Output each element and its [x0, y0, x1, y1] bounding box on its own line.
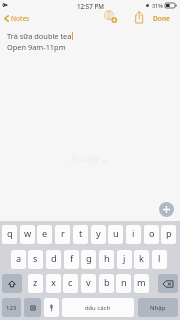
button[interactable]: t [73, 225, 88, 244]
staticText: m [137, 276, 146, 289]
button[interactable]: f [64, 250, 79, 269]
button[interactable]: c [63, 274, 78, 293]
button[interactable]: q [2, 225, 17, 244]
button[interactable]: Backspace [158, 274, 178, 293]
staticText: q [7, 227, 13, 240]
button[interactable]: r [55, 225, 70, 244]
staticText: f [70, 252, 74, 265]
staticText: v [86, 276, 91, 289]
staticText: s [33, 252, 38, 265]
button[interactable]: Emoji [24, 298, 41, 317]
button[interactable]: u [108, 225, 123, 244]
button[interactable]: y [91, 225, 106, 244]
staticText: i [132, 227, 135, 240]
staticText: h [104, 252, 110, 265]
staticText: 31% [152, 2, 163, 9]
button[interactable]: i [126, 225, 141, 244]
button[interactable]: e [37, 225, 52, 244]
button[interactable]: m [134, 274, 149, 293]
staticText: e [42, 227, 48, 240]
staticText: Trà sữa double tea [7, 31, 72, 41]
staticText: a [16, 252, 22, 265]
button[interactable]: a [11, 250, 26, 269]
button[interactable]: Share [132, 9, 146, 24]
staticText: x [51, 276, 56, 289]
staticText: y [96, 227, 101, 240]
button[interactable]: Add [159, 202, 174, 217]
staticText: b [104, 276, 110, 289]
button[interactable]: w [20, 225, 35, 244]
button[interactable]: Attach [104, 10, 118, 24]
staticText: d [51, 252, 57, 265]
staticText: l [158, 252, 161, 265]
button[interactable]: v [81, 274, 96, 293]
staticText: g [86, 252, 92, 265]
staticText: dấu cách [85, 304, 111, 312]
button[interactable]: Done [150, 12, 173, 25]
staticText: j [123, 252, 126, 265]
staticText: t [79, 227, 83, 240]
button[interactable]: o [144, 225, 159, 244]
staticText: w [24, 227, 32, 240]
staticText: o [149, 227, 155, 240]
staticText: k [139, 252, 144, 265]
staticText: 12:57 PM [77, 2, 104, 10]
button[interactable]: b [99, 274, 114, 293]
button[interactable]: Shift [2, 274, 22, 293]
button[interactable]: l [152, 250, 167, 269]
staticText: r [61, 227, 65, 240]
button[interactable]: d [46, 250, 61, 269]
staticText: c [68, 276, 73, 289]
staticText: Nhập [150, 304, 166, 312]
button[interactable]: Notes [0, 12, 34, 25]
staticText: z [33, 276, 38, 289]
button[interactable]: z [28, 274, 43, 293]
button[interactable]: g [81, 250, 96, 269]
button[interactable]: Nhập [138, 298, 178, 317]
button[interactable]: x [46, 274, 61, 293]
button[interactable]: dấu cách [62, 298, 134, 317]
staticText: Open 9am-11pm [7, 42, 66, 52]
button[interactable]: n [116, 274, 131, 293]
staticText: Notes [11, 14, 30, 23]
staticText: n [121, 276, 127, 289]
button[interactable]: h [99, 250, 114, 269]
staticText: p [166, 227, 172, 240]
button[interactable]: s [28, 250, 43, 269]
staticText: 123 [6, 304, 17, 312]
button[interactable]: j [117, 250, 132, 269]
staticText: u [113, 227, 119, 240]
button[interactable]: 123 [2, 298, 21, 317]
staticText: Done [153, 14, 170, 23]
button[interactable]: p [161, 225, 176, 244]
button[interactable]: Dictate [44, 298, 59, 317]
button[interactable]: k [134, 250, 149, 269]
